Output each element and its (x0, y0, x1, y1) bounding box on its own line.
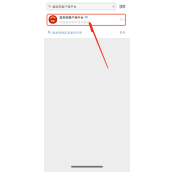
staticText: 更多 (120, 31, 126, 34)
staticText: 搜索 (119, 4, 125, 9)
staticText: 关注 (120, 18, 126, 21)
button[interactable]: 国务院客户端平台 (44, 12, 130, 27)
staticText: 国务院客户端平台 (52, 5, 76, 8)
staticText: 搜索网络结果更多内容 (52, 31, 82, 34)
button[interactable]: 搜索网络结果更多内容 (44, 27, 130, 38)
staticText: 中国政府网的官方帐号 (60, 20, 90, 24)
button[interactable]: 国务院客户端平台 (47, 3, 116, 10)
button[interactable]: 搜索 (118, 3, 127, 10)
staticText: 国务院客户端平台 (60, 15, 84, 19)
